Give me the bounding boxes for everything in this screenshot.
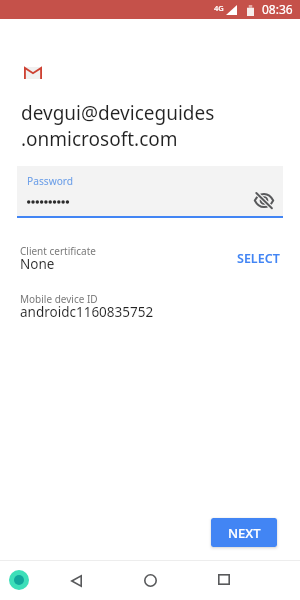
staticText: None [20,255,55,273]
staticText: NEXT [228,524,261,542]
button[interactable]: Recents [204,560,244,599]
staticText: SELECT [237,250,280,267]
button[interactable]: Client certificate [0,240,300,276]
button[interactable]: Assistant [2,560,35,599]
button[interactable]: SELECT [233,244,284,273]
button[interactable]: NEXT [211,518,277,547]
staticText: 4G [214,3,224,13]
staticText: Mobile device ID [20,292,98,306]
button[interactable]: Home [130,561,170,600]
staticText: androidc1160835752 [20,303,154,321]
staticText: 08:36 [262,1,293,17]
staticText: devgui@deviceguides .onmicrosoft.com [21,100,215,152]
button[interactable]: Show password [243,183,284,217]
button[interactable]: Back [56,561,96,600]
staticText: Password [27,174,74,188]
button[interactable]: Password [17,166,283,218]
staticText: Client certificate [20,244,96,258]
